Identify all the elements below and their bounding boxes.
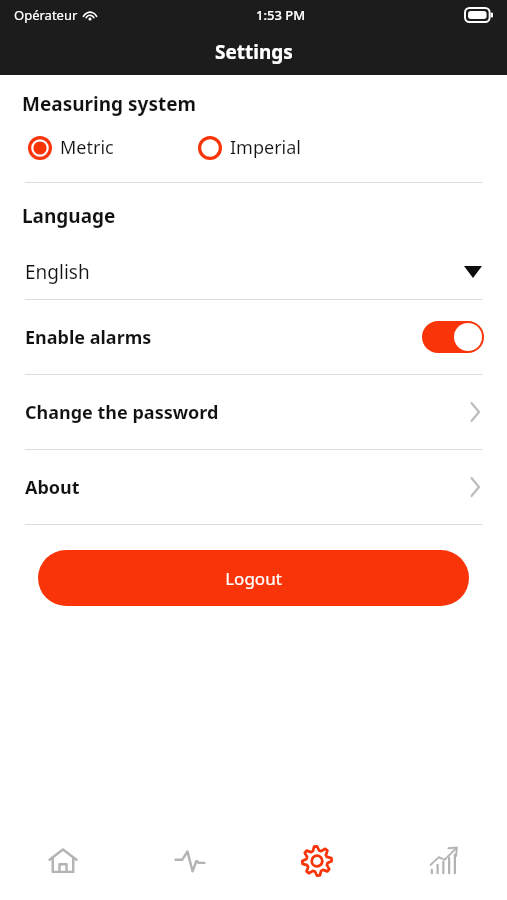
staticText: English [25,259,90,285]
button[interactable]: Home [0,822,126,900]
button[interactable]: About [0,450,507,524]
button[interactable]: Activity [126,822,253,900]
staticText: Metric [60,135,114,160]
staticText: 1:53 PM [256,6,306,24]
staticText: Measuring system [22,91,197,117]
staticText: About [25,475,80,500]
button[interactable]: Logout [38,550,469,606]
button[interactable]: English [0,259,507,285]
staticText: Settings [215,39,293,65]
button[interactable]: Change the password [0,375,507,449]
staticText: Imperial [230,135,301,160]
staticText: Opérateur [14,6,78,24]
button[interactable]: Enable alarms [0,300,507,374]
other: Enable alarms toggle [422,321,484,353]
staticText: Enable alarms [25,325,152,350]
staticText: Language [22,203,116,229]
button[interactable]: Metric [28,135,114,160]
button[interactable]: Settings [253,822,380,900]
staticText: Change the password [25,400,219,425]
button[interactable]: Imperial [198,135,301,160]
staticText: Logout [225,567,282,590]
button[interactable]: Statistics [380,822,507,900]
